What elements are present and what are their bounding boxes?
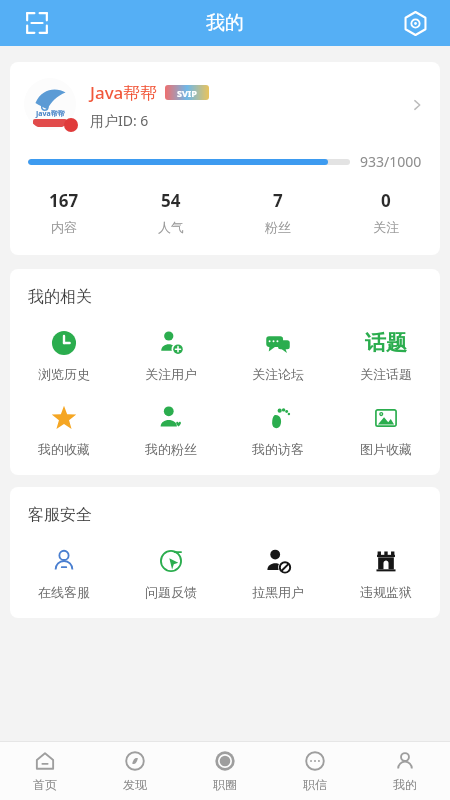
staticText: 客服安全 bbox=[28, 505, 92, 525]
staticText: 关注 bbox=[373, 219, 399, 235]
button[interactable]: 我的收藏 bbox=[10, 402, 117, 459]
button[interactable]: 问题反馈 bbox=[117, 545, 224, 602]
button[interactable]: 167 bbox=[10, 187, 117, 237]
button[interactable]: 7 bbox=[224, 187, 332, 237]
staticText: 职信 bbox=[303, 777, 327, 792]
button[interactable]: 话题 bbox=[332, 327, 440, 384]
staticText: 图片收藏 bbox=[360, 441, 412, 457]
staticText: 我的 bbox=[206, 11, 244, 35]
staticText: 933/1000 bbox=[360, 152, 422, 171]
staticText: 话题 bbox=[365, 330, 407, 356]
staticText: 职圈 bbox=[213, 777, 237, 792]
staticText: 用户ID: 6 bbox=[90, 111, 149, 130]
button[interactable]: 关注论坛 bbox=[224, 327, 332, 384]
staticText: 我的相关 bbox=[28, 287, 92, 307]
button[interactable]: 首页 bbox=[0, 742, 90, 800]
staticText: 人气 bbox=[158, 219, 184, 235]
staticText: 0 bbox=[381, 189, 391, 212]
staticText: 浏览历史 bbox=[38, 366, 90, 382]
staticText: 我的访客 bbox=[252, 441, 304, 457]
staticText: 关注用户 bbox=[145, 366, 197, 382]
staticText: 我的收藏 bbox=[38, 441, 90, 457]
staticText: 内容 bbox=[51, 219, 77, 235]
button[interactable]: 54 bbox=[117, 187, 224, 237]
button[interactable]: 0 bbox=[332, 187, 440, 237]
staticText: 首页 bbox=[33, 777, 57, 792]
staticText: 关注话题 bbox=[360, 366, 412, 382]
button[interactable]: 我的访客 bbox=[224, 402, 332, 459]
button[interactable]: 拉黑用户 bbox=[224, 545, 332, 602]
staticText: 违规监狱 bbox=[360, 584, 412, 600]
staticText: 167 bbox=[49, 189, 79, 212]
button[interactable]: 违规监狱 bbox=[332, 545, 440, 602]
button[interactable]: 浏览历史 bbox=[10, 327, 117, 384]
button[interactable]: Java帮帮 bbox=[10, 62, 440, 132]
button[interactable]: 职圈 bbox=[180, 742, 270, 800]
staticText: 关注论坛 bbox=[252, 366, 304, 382]
button[interactable]: 图片收藏 bbox=[332, 402, 440, 459]
button[interactable]: Settings bbox=[394, 2, 436, 44]
staticText: 问题反馈 bbox=[145, 584, 197, 600]
staticText: Java帮帮 bbox=[36, 109, 65, 119]
button[interactable]: 我的粉丝 bbox=[117, 402, 224, 459]
staticText: 7 bbox=[273, 189, 283, 212]
staticText: 在线客服 bbox=[38, 584, 90, 600]
staticText: 粉丝 bbox=[265, 219, 291, 235]
button[interactable]: 在线客服 bbox=[10, 545, 117, 602]
staticText: 发现 bbox=[123, 777, 147, 792]
button[interactable]: 发现 bbox=[90, 742, 180, 800]
staticText: Java帮帮 bbox=[90, 81, 158, 104]
staticText: SVIP bbox=[177, 87, 197, 99]
staticText: 54 bbox=[161, 189, 181, 212]
staticText: 我的粉丝 bbox=[145, 441, 197, 457]
staticText: 拉黑用户 bbox=[252, 584, 304, 600]
button[interactable]: Scan bbox=[16, 2, 58, 44]
button[interactable]: 职信 bbox=[270, 742, 360, 800]
button[interactable]: 我的 bbox=[360, 742, 450, 800]
staticText: 我的 bbox=[393, 777, 417, 792]
button[interactable]: 关注用户 bbox=[117, 327, 224, 384]
